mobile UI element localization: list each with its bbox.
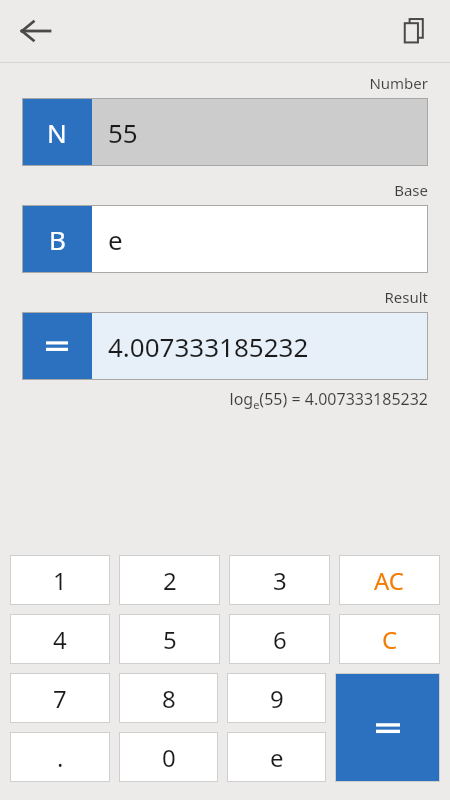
staticText: 3 (273, 564, 287, 597)
button[interactable]: 8 (119, 673, 218, 723)
staticText: loge(55) = 4.007333185232 (229, 388, 428, 412)
staticText: . (57, 741, 64, 774)
button[interactable]: Back (8, 0, 64, 62)
button[interactable]: N (22, 98, 428, 166)
button[interactable]: 9 (227, 673, 326, 723)
staticText: 6 (273, 623, 287, 656)
staticText: Base (394, 180, 428, 200)
staticText: 4 (53, 623, 67, 656)
button[interactable]: 1 (10, 555, 110, 605)
button[interactable]: 6 (229, 614, 330, 664)
staticText: e (270, 741, 284, 774)
button[interactable]: 7 (10, 673, 110, 723)
button[interactable]: Equals (335, 673, 440, 782)
button[interactable]: C (339, 614, 440, 664)
staticText: B (49, 222, 66, 257)
button[interactable]: Copy (388, 0, 440, 62)
staticText: C (382, 623, 398, 656)
button[interactable]: AC (339, 555, 440, 605)
staticText: 9 (270, 682, 284, 715)
button[interactable]: 4 (10, 614, 110, 664)
staticText: 7 (53, 682, 67, 715)
button[interactable]: 5 (119, 614, 220, 664)
staticText: 5 (163, 623, 177, 656)
staticText: 0 (162, 741, 176, 774)
staticText: 2 (163, 564, 177, 597)
button[interactable]: 4.007333185232 (22, 312, 428, 380)
staticText: Number (369, 73, 428, 93)
button[interactable]: 0 (119, 732, 218, 782)
staticText: 1 (53, 564, 67, 597)
staticText: 55 (108, 115, 138, 150)
button[interactable]: 2 (119, 555, 220, 605)
button[interactable]: 3 (229, 555, 330, 605)
staticText: 4.007333185232 (108, 329, 309, 364)
staticText: Result (384, 287, 428, 307)
staticText: e (108, 222, 123, 257)
button[interactable]: . (10, 732, 110, 782)
staticText: 8 (162, 682, 176, 715)
staticText: N (47, 115, 67, 150)
staticText: AC (374, 564, 405, 597)
button[interactable]: B (22, 205, 428, 273)
button[interactable]: e (227, 732, 326, 782)
